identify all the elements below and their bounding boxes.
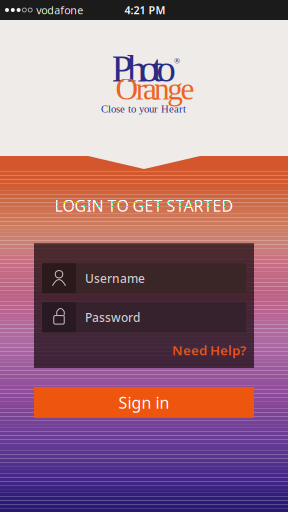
staticText: vodafone xyxy=(36,3,83,17)
staticText: ® xyxy=(174,57,180,65)
staticText: Orange xyxy=(115,72,194,106)
staticText: Password xyxy=(85,309,140,325)
button[interactable]: Password xyxy=(42,302,246,332)
staticText: Sign in xyxy=(118,392,169,413)
staticText: LOGIN TO GET STARTED xyxy=(54,195,233,216)
staticText: 4:21 PM xyxy=(124,3,165,17)
button[interactable]: Need Help? xyxy=(172,337,246,363)
staticText: Need Help? xyxy=(172,341,246,359)
staticText: Username xyxy=(85,270,145,286)
button[interactable]: Username xyxy=(42,263,246,293)
staticText: Close to your Heart xyxy=(101,103,186,115)
button[interactable]: Sign in xyxy=(34,387,254,418)
staticText: Photo xyxy=(111,47,175,90)
